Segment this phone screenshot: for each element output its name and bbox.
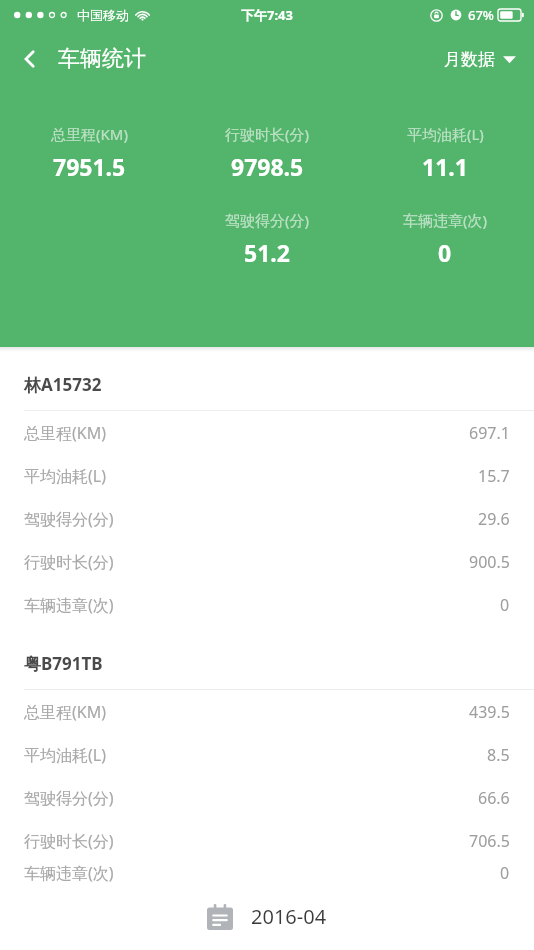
staticText: 车辆违章(次) — [24, 594, 114, 616]
staticText: 0 — [500, 862, 510, 883]
staticText: 总里程(KM) — [24, 701, 107, 723]
button[interactable]: 驾驶得分(分) — [0, 497, 534, 540]
staticText: 下午7:43 — [241, 6, 293, 24]
staticText: 9798.5 — [231, 151, 304, 182]
staticText: 中国移动 — [77, 7, 129, 23]
staticText: 平均油耗(L) — [24, 465, 106, 487]
staticText: 67% — [468, 6, 494, 24]
staticText: 林A15732 — [24, 373, 102, 396]
staticText: 697.1 — [469, 422, 510, 444]
staticText: 车辆违章(次) — [403, 210, 488, 230]
staticText: 29.6 — [478, 508, 510, 530]
staticText: 439.5 — [469, 701, 510, 723]
button[interactable]: 林A15732 — [0, 373, 534, 396]
staticText: 15.7 — [478, 465, 510, 487]
staticText: 行驶时长(分) — [225, 124, 310, 144]
staticText: 0 — [438, 237, 452, 268]
staticText: 行驶时长(分) — [24, 830, 114, 852]
button[interactable]: 粤B791TB — [0, 652, 534, 675]
button[interactable]: 车辆违章(次) — [0, 583, 534, 626]
staticText: 11.1 — [422, 151, 468, 182]
staticText: 900.5 — [469, 551, 510, 573]
staticText: 驾驶得分(分) — [24, 787, 114, 809]
staticText: 总里程(KM) — [51, 124, 128, 144]
button[interactable]: 平均油耗(L) — [0, 454, 534, 497]
staticText: 驾驶得分(分) — [225, 210, 310, 230]
button[interactable]: 月数据 — [438, 41, 522, 78]
staticText: 行驶时长(分) — [24, 551, 114, 573]
staticText: 7951.5 — [53, 151, 126, 182]
button[interactable]: 行驶时长(分) — [0, 819, 534, 862]
button[interactable]: 行驶时长(分) — [0, 540, 534, 583]
staticText: 66.6 — [478, 787, 510, 809]
staticText: 8.5 — [487, 744, 510, 766]
staticText: 粤B791TB — [24, 652, 103, 675]
button[interactable]: 总里程(KM) — [0, 690, 534, 733]
button[interactable]: 2016-04 — [195, 895, 339, 938]
staticText: 2016-04 — [251, 903, 327, 930]
button[interactable]: 驾驶得分(分) — [0, 776, 534, 819]
button[interactable]: 车辆违章(次) — [0, 862, 534, 883]
staticText: 51.2 — [244, 237, 290, 268]
staticText: 车辆统计 — [58, 45, 146, 73]
staticText: 0 — [500, 594, 510, 616]
button[interactable]: 平均油耗(L) — [0, 733, 534, 776]
staticText: 月数据 — [444, 49, 495, 70]
staticText: 平均油耗(L) — [407, 124, 484, 144]
staticText: 平均油耗(L) — [24, 744, 106, 766]
button[interactable]: 总里程(KM) — [0, 411, 534, 454]
button[interactable]: Back — [6, 35, 54, 83]
staticText: 车辆违章(次) — [24, 862, 114, 883]
staticText: 706.5 — [469, 830, 510, 852]
staticText: 驾驶得分(分) — [24, 508, 114, 530]
staticText: 总里程(KM) — [24, 422, 107, 444]
